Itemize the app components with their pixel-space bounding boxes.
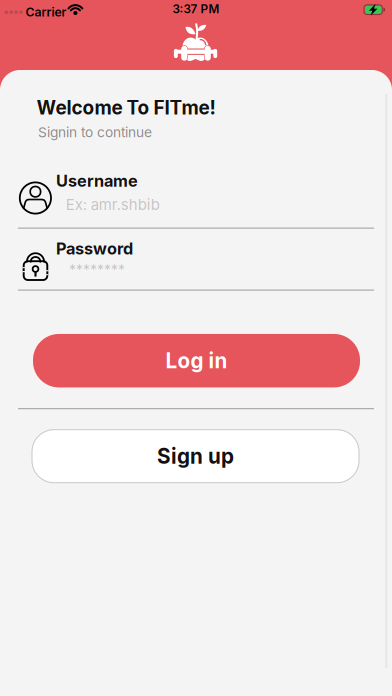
staticText: Ex: amr.shbib — [66, 196, 160, 214]
staticText: ******** — [69, 262, 125, 279]
button[interactable]: Log in — [33, 334, 360, 387]
button[interactable]: Username — [9, 173, 383, 233]
staticText: Welcome To FITme! — [36, 96, 215, 119]
staticText: Username — [56, 171, 138, 191]
staticText: Carrier — [25, 5, 66, 19]
staticText: Password — [56, 239, 133, 258]
staticText: Sign up — [157, 444, 234, 469]
button[interactable]: Password — [9, 240, 383, 300]
button[interactable]: Sign up — [32, 430, 359, 483]
staticText: Log in — [165, 348, 227, 373]
staticText: Signin to continue — [38, 124, 152, 140]
staticText: 3:37 PM — [172, 2, 219, 16]
